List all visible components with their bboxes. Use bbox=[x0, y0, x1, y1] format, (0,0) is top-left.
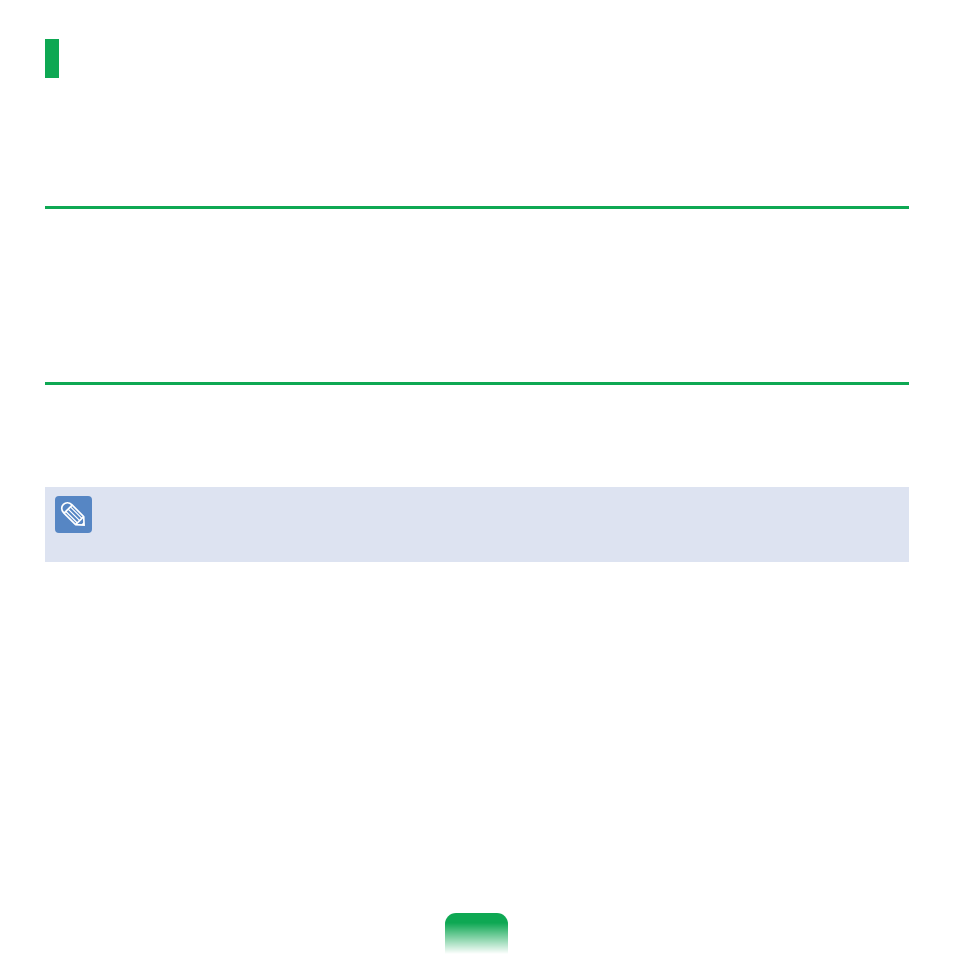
button[interactable]: Compose bbox=[445, 913, 508, 954]
button[interactable]: Edit bbox=[45, 487, 909, 562]
button[interactable]: Edit bbox=[55, 496, 92, 533]
